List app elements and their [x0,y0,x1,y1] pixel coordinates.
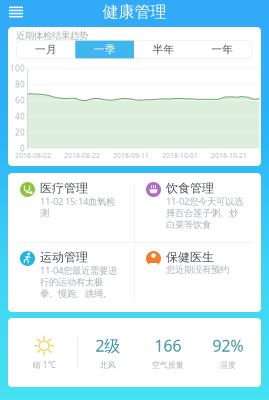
button[interactable]: 医疗管理 [8,173,134,242]
staticText: 北风 [100,360,116,370]
button[interactable]: 运动管理 [8,242,134,311]
staticText: 40 [15,111,25,122]
staticText: 晴 1°C [33,360,56,370]
staticText: 饮食管理 [166,181,214,196]
button[interactable]: 饮食管理 [134,173,260,242]
staticText: 近期体检结果趋势 [16,30,88,41]
staticText: 一年 [211,43,233,56]
staticText: 空气质量 [152,360,184,370]
staticText: 半年 [152,43,174,56]
staticText: 92% [212,335,243,356]
staticText: 保健医生 [166,250,214,265]
staticText: 11-02 15:14血氧检测 [40,195,115,219]
staticText: 健康管理 [102,2,166,22]
staticText: 医疗管理 [40,181,88,196]
staticText: 2级 [95,335,120,356]
button[interactable]: Menu [3,1,29,23]
staticText: 2018-08-02 [15,151,51,160]
staticText: 11-04您最近需要进行的运动有太极拳、慢跑、跳绳。 [40,264,117,299]
staticText: 80 [15,79,25,90]
staticText: 您近期没有预约 [166,264,229,275]
button[interactable]: 一年 [193,40,252,58]
staticText: 运动管理 [40,250,88,265]
staticText: 11-02您今天可以选择百合莲子粥、炒白菜等饮食 [166,195,243,230]
staticText: 2018-10-01 [162,151,198,160]
staticText: 2018-08-22 [64,151,100,160]
button[interactable]: 保健医生 [134,242,260,311]
staticText: 湿度 [220,360,236,370]
staticText: 一季 [94,43,116,56]
staticText: 一月 [35,43,57,56]
staticText: 2018-10-21 [211,151,247,160]
button[interactable]: 一月 [16,40,75,58]
staticText: 100 [10,63,25,74]
staticText: 166 [154,335,181,356]
button[interactable]: 半年 [134,40,193,58]
staticText: 0 [20,143,25,154]
staticText: 60 [15,95,25,106]
button[interactable]: 一季 [75,40,134,58]
staticText: 2018-09-11 [113,151,149,160]
staticText: 20 [15,127,25,138]
